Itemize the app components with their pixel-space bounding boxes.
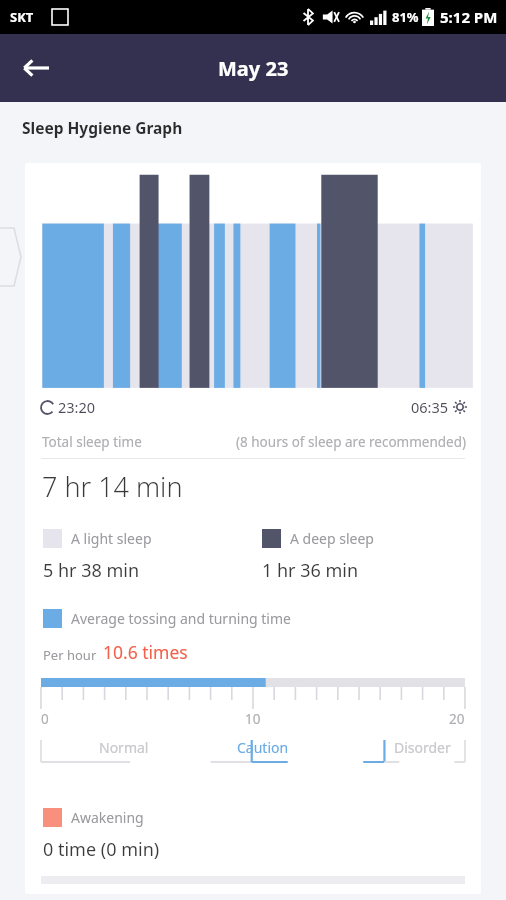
staticText: A light sleep [71,529,152,548]
staticText: 81% [392,8,419,26]
staticText: 20 [449,710,465,728]
staticText: 23:20 [58,397,96,417]
button[interactable]: Back [14,46,58,90]
staticText: May 23 [218,55,289,82]
staticText: Caution [237,738,289,757]
staticText: SKT [10,8,34,26]
staticText: 0 [41,710,49,728]
staticText: 5:12 PM [440,7,498,27]
staticText: Awakening [71,808,144,827]
staticText: Average tossing and turning time [71,609,291,628]
staticText: (8 hours of sleep are recommended) [236,433,467,451]
staticText: 10 [245,710,261,728]
staticText: 1 hr 36 min [262,558,359,583]
staticText: Normal [99,738,149,757]
staticText: A deep sleep [290,529,374,548]
staticText: Disorder [394,738,451,757]
staticText: 0 time (0 min) [43,837,160,862]
staticText: Per hour [43,646,97,664]
staticText: 5 hr 38 min [43,558,140,583]
staticText: 7 hr 14 min [42,468,183,505]
staticText: 10.6 times [103,640,188,664]
staticText: Total sleep time [42,433,142,451]
staticText: 06:35 [411,397,449,417]
staticText: Sleep Hygiene Graph [22,117,183,138]
